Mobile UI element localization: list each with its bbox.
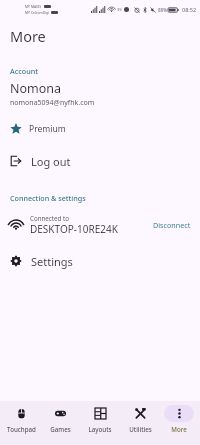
staticText: Utilities bbox=[129, 425, 152, 433]
staticText: DESKTOP-10RE24K bbox=[30, 222, 118, 236]
staticText: MY CelcomDigi bbox=[25, 10, 49, 15]
button[interactable]: Settings bbox=[0, 248, 200, 274]
staticText: Premium bbox=[29, 123, 66, 135]
staticText: Account bbox=[10, 66, 38, 76]
button[interactable]: Games bbox=[41, 405, 79, 433]
staticText: Disconnect bbox=[153, 220, 191, 230]
button[interactable]: Layouts bbox=[81, 405, 119, 433]
staticText: 08:52 bbox=[182, 6, 197, 13]
staticText: Touchpad bbox=[7, 425, 36, 433]
staticText: 39 bbox=[117, 7, 122, 12]
button[interactable]: Utilities bbox=[121, 405, 159, 433]
staticText: More bbox=[10, 26, 46, 46]
button[interactable]: Touchpad bbox=[2, 405, 40, 433]
staticText: MY MAXIS bbox=[25, 4, 42, 9]
staticText: Games bbox=[50, 425, 71, 433]
button[interactable]: Log out bbox=[0, 148, 200, 174]
button[interactable]: Premium bbox=[0, 118, 200, 140]
staticText: nomona5094@nyfhk.com bbox=[10, 98, 95, 108]
staticText: Log out bbox=[31, 154, 71, 169]
button[interactable]: More bbox=[160, 405, 198, 433]
staticText: More bbox=[171, 425, 187, 433]
staticText: Nomona bbox=[10, 80, 62, 97]
button[interactable]: Connected to bbox=[0, 211, 200, 239]
staticText: Connected to bbox=[30, 214, 69, 222]
staticText: 88% bbox=[158, 7, 167, 13]
button[interactable]: Disconnect bbox=[149, 216, 195, 234]
staticText: Layouts bbox=[88, 425, 112, 433]
staticText: Settings bbox=[31, 254, 73, 269]
staticText: Connection & settings bbox=[10, 193, 86, 203]
